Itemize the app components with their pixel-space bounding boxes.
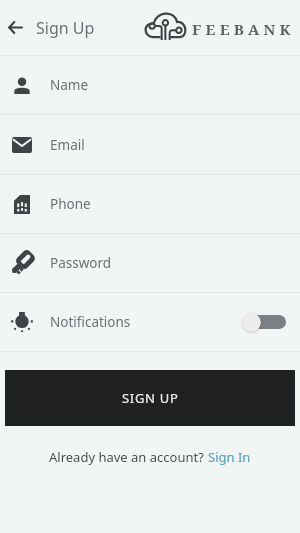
staticText: Phone (50, 195, 91, 213)
button[interactable]: Back (0, 0, 30, 55)
button[interactable]: Name (0, 56, 300, 114)
button[interactable]: Sign In (208, 448, 251, 466)
button[interactable]: Email (0, 115, 300, 174)
staticText: Email (50, 136, 85, 154)
staticText: SIGN UP (122, 389, 179, 407)
staticText: Notifications (50, 313, 131, 331)
button[interactable]: Phone (0, 175, 300, 233)
staticText: Sign Up (36, 17, 95, 39)
staticText: FEEBANK (192, 19, 295, 39)
button[interactable]: SIGN UP (5, 370, 295, 426)
staticText: Name (50, 76, 89, 94)
staticText: Password (50, 254, 112, 272)
button[interactable]: Password (0, 234, 300, 292)
button[interactable]: Notifications (0, 293, 300, 351)
button[interactable]: Notifications toggle (242, 311, 286, 333)
staticText: Already have an account? (49, 448, 208, 466)
staticText: Sign In (208, 448, 251, 466)
